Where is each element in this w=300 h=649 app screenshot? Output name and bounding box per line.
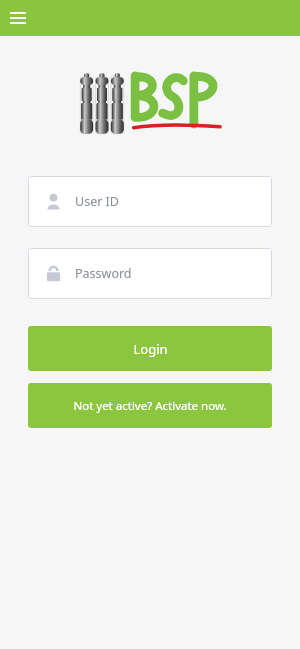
staticText: Not yet active? Activate now. <box>73 398 227 414</box>
button[interactable]: Login <box>28 326 272 371</box>
staticText: Password <box>75 265 132 282</box>
button[interactable]: User ID <box>28 176 272 227</box>
button[interactable]: Password <box>28 248 272 299</box>
button[interactable]: Not yet active? Activate now. <box>28 383 272 428</box>
staticText: Login <box>133 340 168 358</box>
button[interactable]: Open navigation menu <box>4 4 32 32</box>
staticText: User ID <box>75 193 119 210</box>
